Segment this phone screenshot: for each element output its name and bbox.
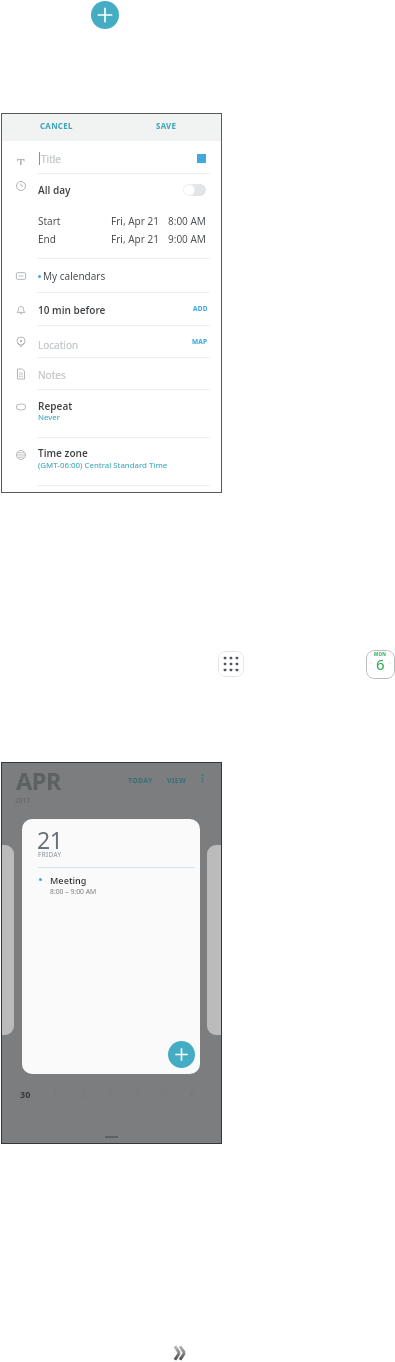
staticText: ADD: [193, 304, 208, 313]
button[interactable]: [1, 438, 222, 485]
button[interactable]: ADD: [193, 304, 208, 313]
staticText: TODAY: [128, 776, 153, 786]
button[interactable]: [1, 229, 222, 247]
staticText: (GMT-06:00) Central Standard Time: [38, 460, 168, 471]
button[interactable]: MAP: [192, 337, 208, 346]
button[interactable]: [1, 326, 222, 357]
button[interactable]: SAVE: [156, 121, 177, 132]
button[interactable]: More options: [197, 773, 208, 784]
staticText: MAP: [192, 337, 208, 346]
button[interactable]: [1, 390, 222, 437]
staticText: SAVE: [156, 121, 177, 132]
button[interactable]: VIEW: [167, 776, 187, 786]
button[interactable]: CANCEL: [40, 121, 73, 132]
staticText: CANCEL: [40, 121, 73, 132]
staticText: T: [17, 155, 25, 165]
staticText: 2017: [15, 796, 30, 805]
staticText: Fri, Apr 21: [111, 214, 159, 228]
staticText: MON: [374, 651, 387, 657]
staticText: 9:00 AM: [168, 232, 206, 246]
staticText: 30: [20, 1088, 31, 1100]
staticText: 6: [376, 654, 385, 674]
staticText: APR: [16, 765, 62, 797]
staticText: All day: [38, 183, 71, 197]
button[interactable]: [1, 358, 222, 389]
staticText: VIEW: [167, 776, 187, 786]
button[interactable]: All day toggle: [183, 184, 206, 196]
staticText: Title: [41, 152, 61, 166]
button[interactable]: Apps: [218, 651, 244, 677]
staticText: My calendars: [43, 269, 106, 283]
staticText: Time zone: [38, 446, 88, 460]
staticText: Fri, Apr 21: [111, 232, 159, 246]
staticText: Never: [38, 412, 61, 423]
button[interactable]: [1, 259, 222, 292]
button[interactable]: Create event: [168, 1041, 195, 1068]
staticText: Meeting: [50, 874, 87, 886]
staticText: 8:00 – 9:00 AM: [50, 887, 97, 896]
staticText: 21: [37, 824, 63, 855]
button[interactable]: Add event: [91, 1, 119, 29]
button[interactable]: [1, 293, 222, 325]
staticText: 8:00 AM: [168, 214, 206, 228]
button[interactable]: [1, 174, 222, 200]
button[interactable]: [1, 141, 222, 173]
button[interactable]: Meeting: [39, 874, 192, 896]
staticText: Location: [38, 338, 79, 352]
staticText: FRIDAY: [38, 850, 62, 859]
button[interactable]: TODAY: [128, 776, 153, 786]
staticText: Repeat: [38, 399, 73, 413]
staticText: Notes: [38, 368, 66, 382]
staticText: 10 min before: [38, 303, 106, 317]
staticText: Start: [38, 214, 61, 228]
staticText: End: [38, 232, 56, 246]
button[interactable]: [1, 211, 222, 229]
button[interactable]: Calendar: [366, 650, 395, 679]
